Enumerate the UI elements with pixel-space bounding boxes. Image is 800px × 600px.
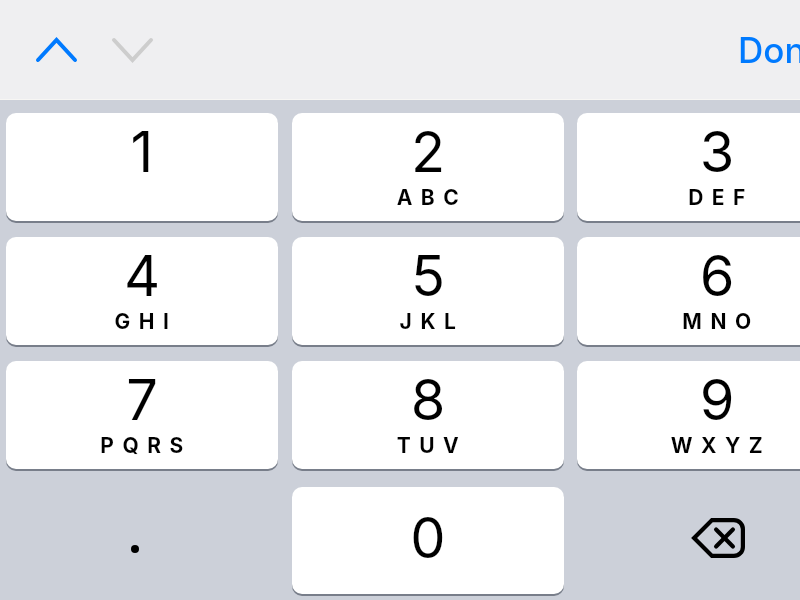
button[interactable]: Previous field xyxy=(18,20,94,80)
staticText: Done xyxy=(738,29,800,71)
button[interactable]: Done xyxy=(724,19,800,81)
staticText: 4 xyxy=(6,242,278,310)
staticText: 1 xyxy=(6,118,278,186)
staticText: 6 xyxy=(581,242,800,310)
button[interactable]: 1 xyxy=(6,113,278,221)
button[interactable]: 4 xyxy=(6,237,278,345)
staticText: 7 xyxy=(6,366,278,434)
staticText: 9 xyxy=(581,366,800,434)
button[interactable]: 0 xyxy=(292,487,564,594)
staticText: WXYZ xyxy=(585,433,800,458)
staticText: 5 xyxy=(292,242,564,310)
staticText: 3 xyxy=(581,118,800,186)
staticText: JKL xyxy=(296,309,564,334)
button[interactable]: 3 xyxy=(577,113,800,221)
button[interactable]: 5 xyxy=(292,237,564,345)
button[interactable]: Decimal point xyxy=(6,487,278,594)
staticText: DEF xyxy=(585,185,800,210)
button[interactable]: 9 xyxy=(577,361,800,469)
button[interactable]: 8 xyxy=(292,361,564,469)
staticText: 8 xyxy=(292,366,564,434)
button[interactable]: Backspace xyxy=(577,487,800,594)
staticText: PQRS xyxy=(10,433,278,458)
button[interactable]: 7 xyxy=(6,361,278,469)
button[interactable]: 6 xyxy=(577,237,800,345)
staticText: ABC xyxy=(296,185,564,210)
staticText: 2 xyxy=(292,118,564,186)
button[interactable]: Next field xyxy=(94,20,170,80)
button[interactable]: 2 xyxy=(292,113,564,221)
staticText: MNO xyxy=(585,309,800,334)
staticText: GHI xyxy=(10,309,278,334)
staticText: TUV xyxy=(296,433,564,458)
staticText: 0 xyxy=(292,504,564,572)
